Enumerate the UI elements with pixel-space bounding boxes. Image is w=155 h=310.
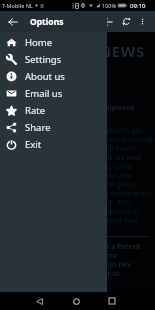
button[interactable]: Rate xyxy=(0,102,107,119)
staticText: in Asia, the Dubai and xyxy=(60,171,132,180)
staticText: Big Bank Filed a Patent xyxy=(60,242,141,251)
button[interactable]: Share xyxy=(0,119,107,136)
staticText: Ethereum Completed xyxy=(60,103,135,113)
button[interactable]: Back xyxy=(30,292,48,310)
staticText: Share xyxy=(25,121,51,134)
staticText: Ethereum Completed in xyxy=(60,207,139,216)
staticText: Rate xyxy=(25,104,46,117)
staticText: Options xyxy=(30,16,64,28)
button[interactable]: Back xyxy=(0,11,25,32)
staticText: leading crypto marketplace xyxy=(60,189,152,198)
staticText: 09:10 xyxy=(130,2,146,10)
staticText: Exit xyxy=(25,138,42,151)
staticText: Bitcoin users in South xyxy=(60,144,135,153)
button[interactable]: Email us xyxy=(0,85,107,102)
staticText: Bitcoin ATM has Used xyxy=(60,162,131,171)
button[interactable]: Refresh xyxy=(117,11,135,32)
staticText: launching it with global xyxy=(60,180,137,189)
staticText: Custody, Bitcoin Dev xyxy=(60,260,132,269)
button[interactable]: Home xyxy=(0,34,107,51)
staticText: Africa is now on the map xyxy=(60,153,142,162)
staticText: their money entirely through xyxy=(60,135,155,144)
staticText: and trading firm First xyxy=(60,198,132,207)
staticText: Email us xyxy=(25,87,63,100)
staticText: their Bitcoin Based Real xyxy=(60,216,138,225)
staticText: to Set Up Crypto xyxy=(60,251,118,260)
button[interactable]: Recent apps xyxy=(103,292,121,310)
staticText: Home xyxy=(25,36,53,49)
button[interactable]: Exit xyxy=(0,136,107,153)
button[interactable]: Settings xyxy=(0,51,107,68)
button[interactable]: More options xyxy=(135,11,149,32)
staticText: People will be able to get xyxy=(60,126,143,135)
staticText: T-Mobile NL xyxy=(2,2,33,9)
button[interactable]: About us xyxy=(0,68,107,85)
button[interactable]: Back xyxy=(98,11,117,32)
staticText: 100% xyxy=(102,2,117,9)
staticText: Wallet on Launch xyxy=(60,269,121,278)
button[interactable]: Home xyxy=(67,292,85,310)
staticText: NEWS xyxy=(99,41,145,61)
staticText: Settings xyxy=(25,53,62,66)
staticText: About us xyxy=(25,70,65,83)
